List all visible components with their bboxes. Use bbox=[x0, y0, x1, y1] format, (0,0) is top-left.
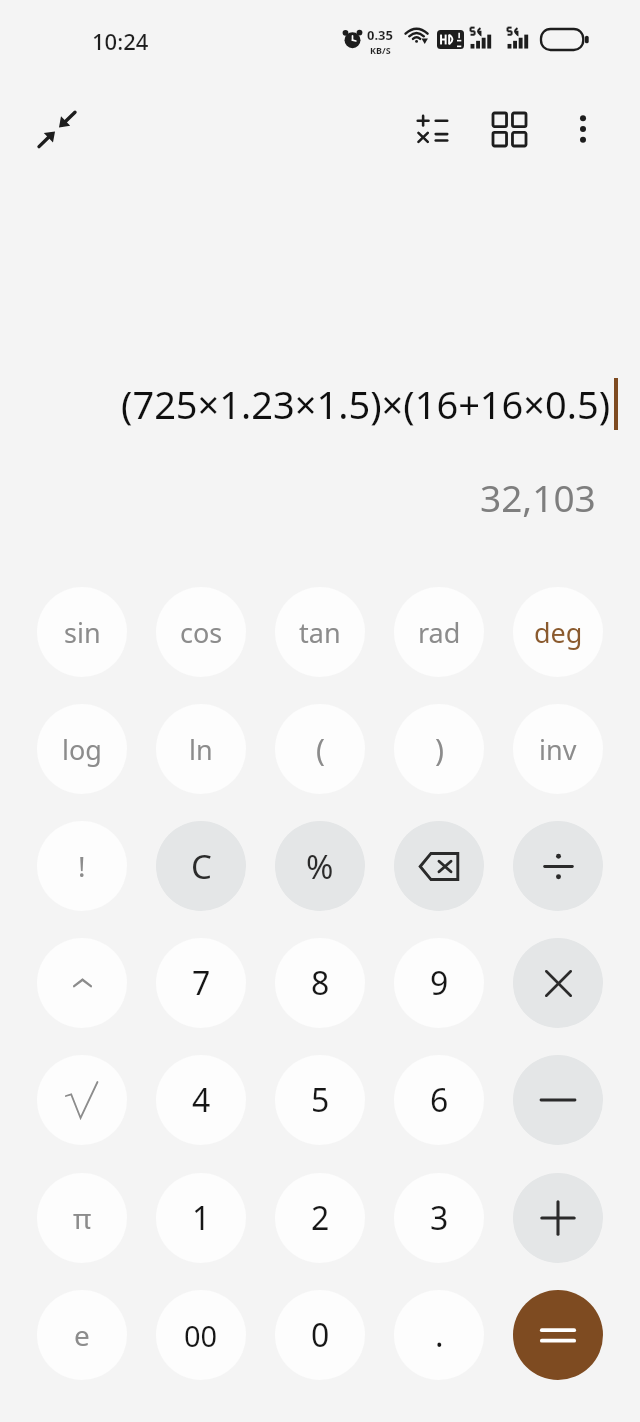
button[interactable]: Equals bbox=[513, 1290, 603, 1380]
staticText: 0.35 bbox=[367, 26, 393, 44]
staticText: 9 bbox=[430, 961, 449, 1005]
button[interactable]: 0 bbox=[275, 1290, 365, 1380]
button[interactable]: 8 bbox=[275, 938, 365, 1028]
button[interactable]: Square root bbox=[37, 1055, 127, 1145]
staticText: inv bbox=[539, 731, 577, 768]
staticText: tan bbox=[299, 614, 341, 651]
button[interactable]: More options bbox=[552, 98, 614, 160]
staticText: 6 bbox=[430, 1078, 449, 1122]
button[interactable]: Power bbox=[37, 938, 127, 1028]
button[interactable]: Unit converter bbox=[478, 98, 540, 160]
button[interactable]: 00 bbox=[156, 1290, 246, 1380]
button[interactable]: . bbox=[394, 1290, 484, 1380]
staticText: ) bbox=[435, 729, 444, 770]
staticText: 4 bbox=[192, 1078, 211, 1122]
staticText: C bbox=[191, 844, 212, 889]
staticText: 2 bbox=[311, 1196, 330, 1240]
button[interactable]: Plus bbox=[513, 1173, 603, 1263]
button[interactable]: ln bbox=[156, 704, 246, 794]
button[interactable]: % bbox=[275, 821, 365, 911]
button[interactable]: sin bbox=[37, 587, 127, 677]
button[interactable]: 7 bbox=[156, 938, 246, 1028]
staticText: % bbox=[306, 844, 334, 889]
staticText: (725×1.23×1.5)×(16+16×0.5) bbox=[121, 378, 611, 430]
staticText: cos bbox=[180, 614, 223, 651]
button[interactable]: Multiply bbox=[513, 938, 603, 1028]
button[interactable]: 9 bbox=[394, 938, 484, 1028]
button[interactable]: Backspace bbox=[394, 821, 484, 911]
button[interactable]: ) bbox=[394, 704, 484, 794]
button[interactable]: Divide bbox=[513, 821, 603, 911]
staticText: π bbox=[73, 1199, 92, 1237]
staticText: 0 bbox=[311, 1313, 330, 1357]
staticText: 1 bbox=[192, 1196, 211, 1240]
staticText: 3 bbox=[430, 1196, 449, 1240]
staticText: ln bbox=[189, 731, 213, 768]
staticText: ! bbox=[78, 847, 86, 885]
staticText: deg bbox=[534, 614, 583, 651]
button[interactable]: Operations bbox=[404, 98, 466, 160]
button[interactable]: ! bbox=[37, 821, 127, 911]
staticText: sin bbox=[64, 614, 101, 651]
button[interactable]: deg bbox=[513, 587, 603, 677]
staticText: 5 bbox=[311, 1078, 330, 1122]
button[interactable]: Minus bbox=[513, 1055, 603, 1145]
staticText: 8 bbox=[311, 961, 330, 1005]
staticText: . bbox=[435, 1313, 444, 1357]
staticText: 32,103 bbox=[480, 472, 596, 522]
button[interactable]: 3 bbox=[394, 1173, 484, 1263]
staticText: rad bbox=[418, 614, 461, 651]
button[interactable]: ( bbox=[275, 704, 365, 794]
button[interactable]: tan bbox=[275, 587, 365, 677]
staticText: e bbox=[74, 1316, 90, 1354]
button[interactable]: π bbox=[37, 1173, 127, 1263]
button[interactable]: 6 bbox=[394, 1055, 484, 1145]
button[interactable]: cos bbox=[156, 587, 246, 677]
button[interactable]: 5 bbox=[275, 1055, 365, 1145]
staticText: 10:24 bbox=[92, 26, 149, 56]
staticText: KB/S bbox=[370, 44, 391, 56]
button[interactable]: e bbox=[37, 1290, 127, 1380]
button[interactable]: 1 bbox=[156, 1173, 246, 1263]
button[interactable]: inv bbox=[513, 704, 603, 794]
button[interactable]: 2 bbox=[275, 1173, 365, 1263]
button[interactable]: log bbox=[37, 704, 127, 794]
staticText: 00 bbox=[184, 1316, 218, 1355]
staticText: ( bbox=[316, 729, 325, 770]
button[interactable]: C bbox=[156, 821, 246, 911]
button[interactable]: Collapse bbox=[26, 98, 88, 160]
button[interactable]: 4 bbox=[156, 1055, 246, 1145]
staticText: 7 bbox=[192, 961, 211, 1005]
button[interactable]: rad bbox=[394, 587, 484, 677]
staticText: log bbox=[62, 731, 102, 768]
